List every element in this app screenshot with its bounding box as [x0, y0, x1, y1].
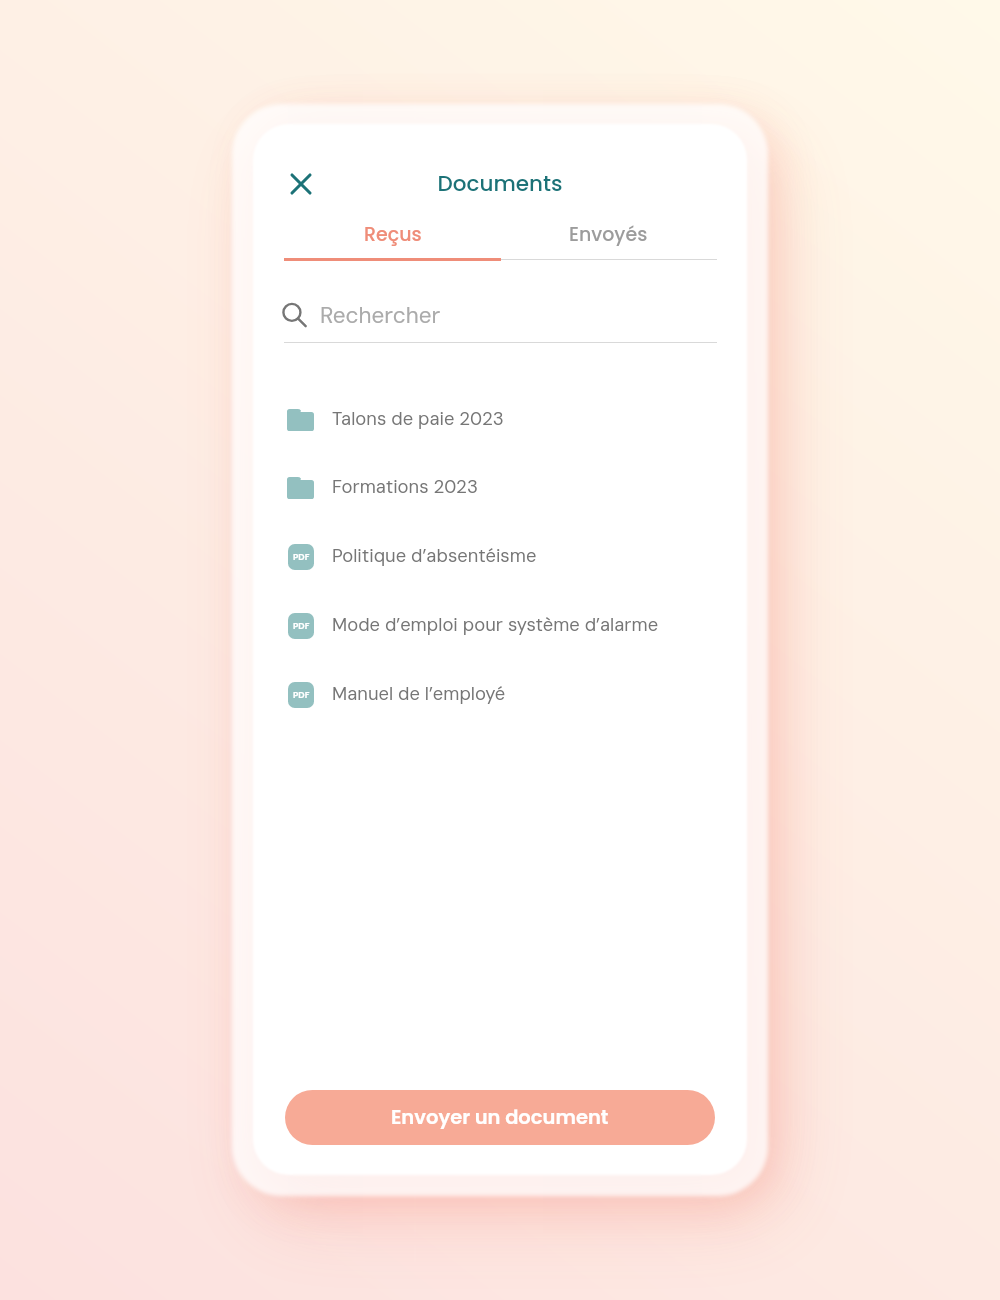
staticText: Politique d’absentéisme	[332, 544, 537, 568]
staticText: PDF	[293, 689, 310, 701]
button[interactable]: Rechercher	[281, 292, 714, 338]
staticText: Reçus	[364, 221, 422, 248]
staticText: Manuel de l’employé	[332, 682, 506, 706]
button[interactable]: PDF	[253, 524, 747, 593]
staticText: PDF	[293, 620, 310, 632]
button[interactable]: Talons de paie 2023	[253, 387, 747, 456]
staticText: Envoyer un document	[391, 1104, 609, 1131]
staticText: Talons de paie 2023	[332, 407, 504, 431]
button[interactable]: Envoyer un document	[285, 1090, 715, 1145]
button[interactable]: PDF	[253, 662, 747, 731]
staticText: Formations 2023	[332, 475, 478, 499]
staticText: Rechercher	[320, 301, 441, 330]
staticText: Documents	[253, 168, 747, 198]
staticText: PDF	[293, 551, 310, 563]
button[interactable]: Close	[279, 162, 323, 206]
button[interactable]: Envoyés	[500, 221, 717, 259]
button[interactable]: PDF	[253, 593, 747, 662]
staticText: Mode d’emploi pour système d’alarme	[332, 613, 659, 637]
staticText: Envoyés	[569, 221, 648, 248]
button[interactable]: Reçus	[284, 221, 501, 259]
button[interactable]: Formations 2023	[253, 455, 747, 524]
